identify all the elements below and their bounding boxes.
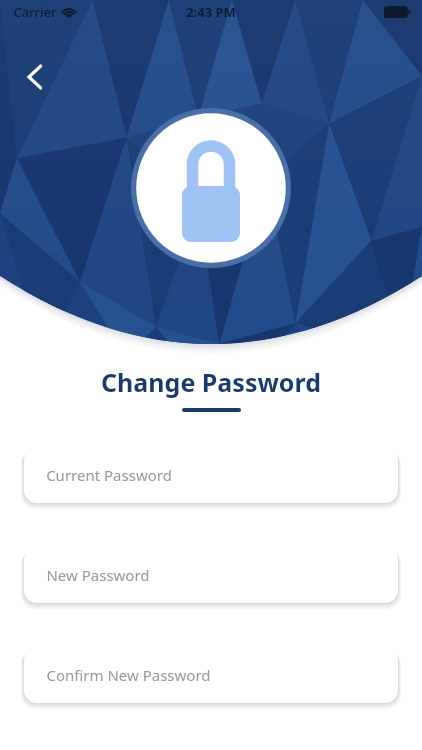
button[interactable]: Current Password <box>24 447 398 503</box>
staticText: Current Password <box>46 465 172 485</box>
staticText: New Password <box>46 565 150 585</box>
staticText: Change Password <box>101 365 321 399</box>
button[interactable]: Confirm New Password <box>24 647 398 703</box>
staticText: 2:43 PM <box>186 3 236 21</box>
staticText: Carrier <box>13 3 57 21</box>
staticText: Confirm New Password <box>46 665 211 685</box>
button[interactable]: New Password <box>24 547 398 603</box>
button[interactable]: Back <box>12 54 58 100</box>
